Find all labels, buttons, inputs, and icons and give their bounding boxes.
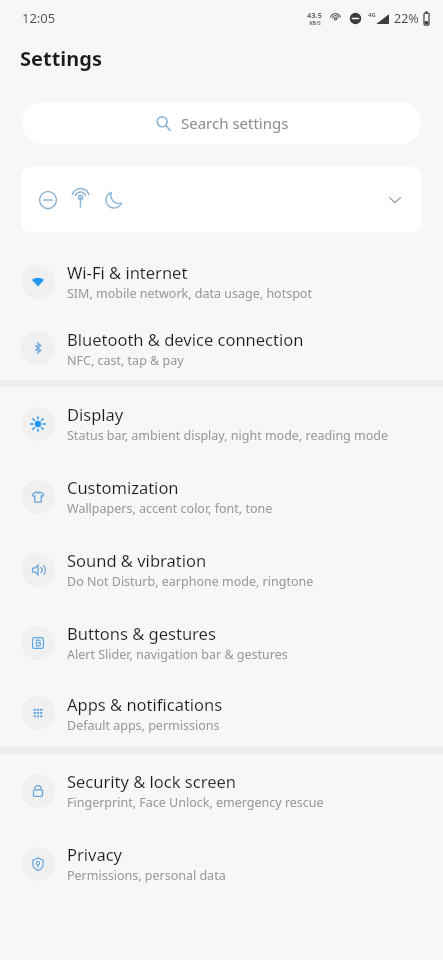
button[interactable]: Expand (380, 185, 410, 215)
button[interactable]: Do not disturb (21, 167, 422, 232)
button[interactable]: Display (0, 387, 443, 460)
staticText: Permissions, personal data (67, 867, 226, 884)
staticText: 12:05 (22, 9, 56, 27)
staticText: Security & lock screen (67, 770, 236, 792)
staticText: Display (67, 403, 124, 425)
staticText: Buttons & gestures (67, 622, 216, 644)
staticText: Customization (67, 476, 179, 498)
staticText: Alert Slider, navigation bar & gestures (67, 646, 288, 663)
button[interactable]: Buttons & gestures (0, 606, 443, 679)
button[interactable]: Apps & notifications (0, 679, 443, 747)
staticText: Default apps, permissions (67, 717, 220, 734)
staticText: 43.5 (307, 10, 322, 20)
staticText: NFC, cast, tap & pay (67, 352, 184, 369)
staticText: Apps & notifications (67, 693, 223, 715)
staticText: Wi-Fi & internet (67, 261, 188, 283)
staticText: Do Not Disturb, earphone mode, ringtone (67, 573, 314, 590)
button[interactable]: Do not disturb (31, 183, 64, 216)
staticText: Sound & vibration (67, 549, 207, 571)
staticText: Wallpapers, accent color, font, tone (67, 500, 273, 517)
staticText: KB/S (309, 20, 321, 27)
button[interactable]: Security & lock screen (0, 754, 443, 827)
button[interactable]: Night mode (97, 183, 130, 216)
button[interactable]: Customization (0, 460, 443, 533)
staticText: Fingerprint, Face Unlock, emergency resc… (67, 794, 324, 811)
button[interactable]: Privacy (0, 827, 443, 900)
button[interactable]: Hotspot (64, 183, 97, 216)
staticText: Search settings (181, 113, 289, 133)
staticText: 22% (394, 10, 419, 27)
staticText: 4G (368, 11, 376, 19)
button[interactable]: Sound & vibration (0, 533, 443, 606)
staticText: Privacy (67, 843, 123, 865)
button[interactable]: Bluetooth & device connection (0, 316, 443, 380)
staticText: Settings (20, 45, 102, 72)
staticText: SIM, mobile network, data usage, hotspot (67, 285, 312, 302)
staticText: Status bar, ambient display, night mode,… (67, 427, 389, 444)
button[interactable]: Wi-Fi & internet (0, 247, 443, 316)
staticText: Bluetooth & device connection (67, 328, 304, 350)
button[interactable]: Search settings (22, 102, 421, 144)
